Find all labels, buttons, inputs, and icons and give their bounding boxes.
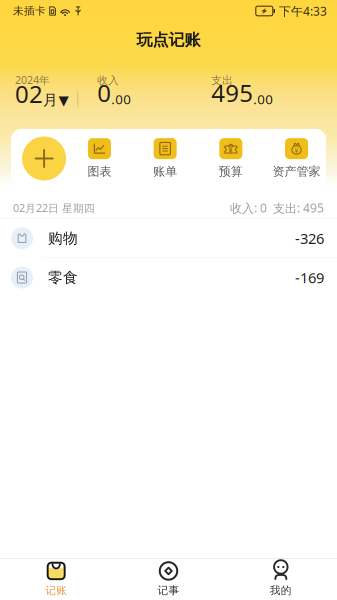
staticText: -169 bbox=[295, 268, 324, 287]
button[interactable]: 图表 bbox=[67, 129, 132, 188]
staticText: 495 bbox=[211, 77, 253, 108]
staticText: 收入 bbox=[97, 74, 119, 87]
staticText: 预算 bbox=[219, 164, 243, 179]
button[interactable]: ¥ bbox=[264, 129, 329, 188]
staticText: 账单 bbox=[153, 164, 177, 179]
staticText: 0 bbox=[97, 77, 111, 108]
staticText: ¥ bbox=[228, 145, 233, 155]
staticText: 月 bbox=[43, 91, 58, 109]
staticText: ▼ bbox=[58, 93, 68, 108]
button[interactable]: 记账 bbox=[0, 559, 112, 600]
staticText: 资产管家 bbox=[273, 164, 321, 179]
staticText: 02月22日 星期四 bbox=[13, 201, 95, 215]
button[interactable]: 新增记账 bbox=[8, 129, 67, 188]
staticText: 2024年 bbox=[15, 73, 50, 87]
button[interactable]: 记事 bbox=[112, 559, 225, 600]
staticText: 下午4:33 bbox=[279, 3, 327, 19]
staticText: .00 bbox=[253, 90, 273, 108]
staticText: ¥ bbox=[295, 146, 299, 155]
staticText: 记事 bbox=[157, 584, 179, 597]
staticText: -326 bbox=[295, 228, 324, 248]
staticText: 购物 bbox=[48, 229, 78, 247]
staticText: 未插卡 bbox=[13, 4, 46, 17]
staticText: 支出 bbox=[211, 74, 233, 87]
staticText: 收入: 0 支出: 495 bbox=[230, 200, 324, 216]
staticText: 图表 bbox=[87, 164, 111, 179]
staticText: 我的 bbox=[270, 584, 292, 597]
staticText: 玩点记账 bbox=[136, 30, 200, 50]
staticText: 记账 bbox=[45, 584, 67, 597]
staticText: 零食 bbox=[48, 268, 78, 286]
button[interactable]: 购物 bbox=[0, 219, 337, 258]
staticText: 02 bbox=[15, 78, 43, 109]
button[interactable]: 零食 bbox=[0, 258, 337, 298]
button[interactable]: 账单 bbox=[132, 129, 198, 188]
button[interactable]: ¥ bbox=[198, 129, 264, 188]
staticText: .00 bbox=[111, 90, 131, 108]
button[interactable]: 我的 bbox=[225, 559, 337, 600]
